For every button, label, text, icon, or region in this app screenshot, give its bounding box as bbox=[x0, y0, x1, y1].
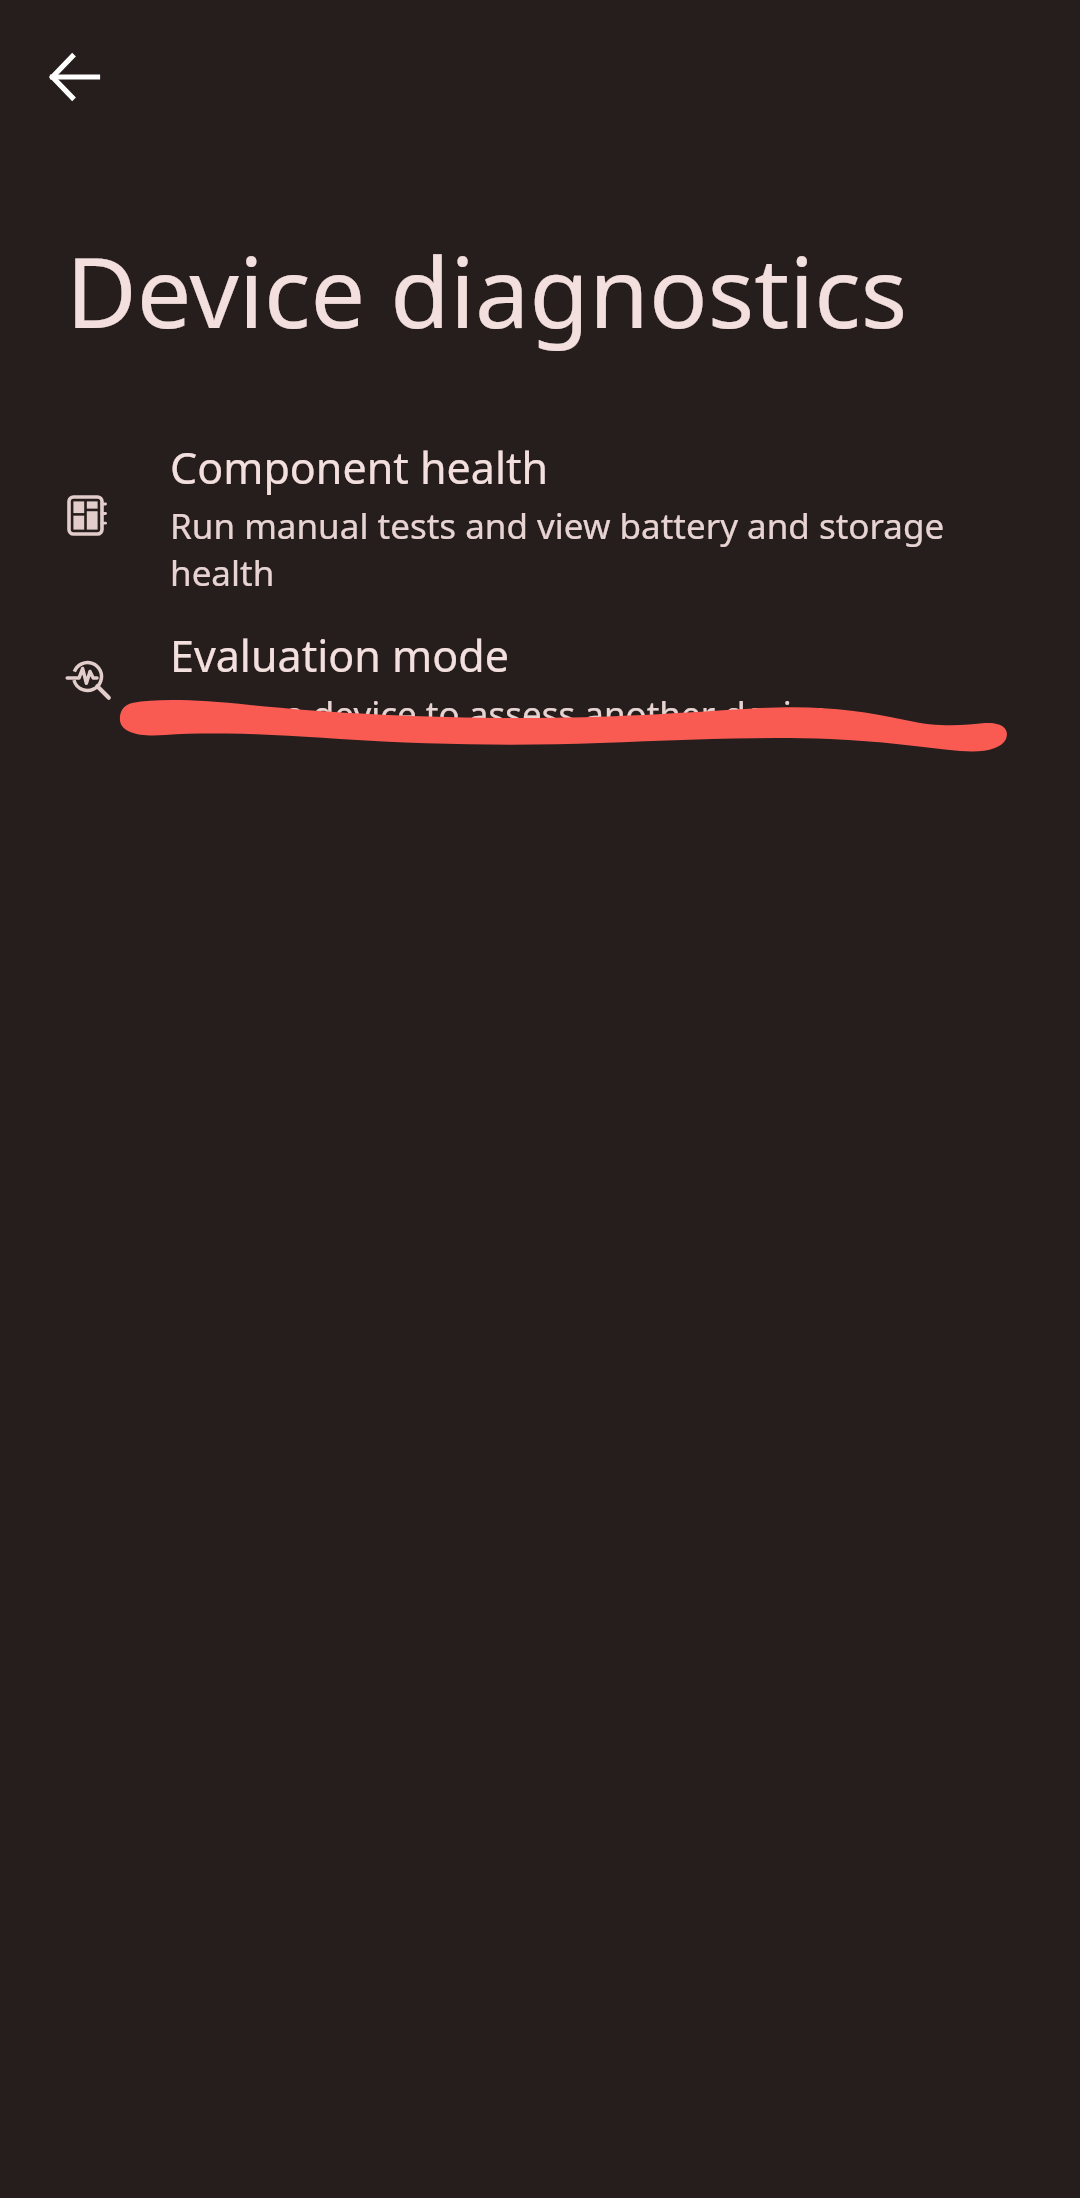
staticText: Run manual tests and view battery and st… bbox=[170, 502, 1020, 596]
button[interactable]: Evaluation mode bbox=[0, 620, 1080, 761]
staticText: Device diagnostics bbox=[66, 224, 908, 356]
staticText: Evaluation mode bbox=[170, 626, 509, 684]
staticText: Use one device to assess another device bbox=[170, 690, 829, 737]
button[interactable]: Component health bbox=[0, 432, 1080, 620]
staticText: Component health bbox=[170, 438, 549, 496]
button[interactable]: Back bbox=[22, 24, 128, 130]
